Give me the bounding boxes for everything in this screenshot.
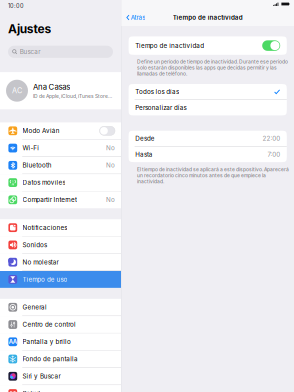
button[interactable]: Wi-Fi <box>0 140 121 157</box>
staticText: Define un periodo de tiempo de inactivid… <box>137 59 288 77</box>
staticText: Wi-Fi <box>23 144 39 152</box>
staticText: 10:00 <box>8 3 24 9</box>
staticText: Fondo de pantalla <box>23 355 78 363</box>
staticText: ID de Apple, iCloud, iTunes Store… <box>33 93 112 99</box>
staticText: No molestar <box>23 258 59 266</box>
staticText: Notificaciones <box>23 224 67 231</box>
button[interactable]: AA <box>0 333 121 351</box>
button[interactable]: Notificaciones <box>0 219 121 236</box>
staticText: Buscar <box>20 48 40 56</box>
staticText: 22:00 <box>263 135 280 142</box>
button[interactable]: Siri y Buscar <box>0 368 121 385</box>
staticText: Sonidos <box>23 241 47 249</box>
staticText: Tiempo de inactividad <box>173 14 243 21</box>
button[interactable]: Modo Avián <box>0 122 121 140</box>
staticText: Compartir Internet <box>23 196 77 204</box>
staticText: AC <box>12 86 22 95</box>
staticText: Todos los días <box>135 88 179 96</box>
staticText: Datos móviles <box>23 179 65 186</box>
button[interactable]: AC <box>0 72 121 109</box>
staticText: AA <box>9 338 17 345</box>
staticText: Modo Avián <box>23 127 60 135</box>
button[interactable]: Buscar <box>0 46 121 58</box>
staticText: Tiempo de uso <box>23 276 67 283</box>
button[interactable]: Datos móviles <box>0 174 121 191</box>
button[interactable]: Centro de control <box>0 316 121 333</box>
button[interactable]: Compartir Internet <box>0 191 121 208</box>
staticText: Tiempo de inactividad <box>135 42 204 49</box>
button[interactable]: Tiempo de uso <box>0 271 121 288</box>
button[interactable]: Bluetooth <box>0 157 121 174</box>
button[interactable]: Atrás <box>121 12 145 23</box>
button[interactable]: General <box>0 299 121 316</box>
staticText: Personalizar días <box>135 104 187 111</box>
button[interactable]: Salud <box>0 385 121 392</box>
staticText: No <box>106 196 115 204</box>
button[interactable]: Todos los días <box>129 84 287 99</box>
staticText: 7:00 <box>267 151 280 158</box>
staticText: El tiempo de inactividad se aplicará a e… <box>137 166 289 184</box>
staticText: Ajustes <box>8 22 51 36</box>
staticText: Pantalla y brillo <box>23 338 71 346</box>
staticText: General <box>23 303 47 311</box>
staticText: No <box>106 161 115 169</box>
staticText: Hasta <box>135 151 153 158</box>
button[interactable]: No molestar <box>0 254 121 271</box>
button[interactable]: Sonidos <box>0 236 121 254</box>
staticText: Salud <box>23 390 40 392</box>
staticText: Ana Casas <box>33 82 70 92</box>
staticText: Siri y Buscar <box>23 372 60 380</box>
button[interactable]: Fondo de pantalla <box>0 351 121 368</box>
staticText: Desde <box>135 135 155 142</box>
button[interactable]: Tiempo de inactividad <box>129 36 287 55</box>
staticText: Bluetooth <box>23 161 52 169</box>
button[interactable]: Personalizar días <box>129 100 287 115</box>
staticText: Centro de control <box>23 321 76 328</box>
button[interactable]: Desde <box>129 131 287 146</box>
staticText: No <box>106 144 115 152</box>
staticText: Atrás <box>131 14 145 21</box>
button[interactable]: Hasta <box>129 147 287 162</box>
